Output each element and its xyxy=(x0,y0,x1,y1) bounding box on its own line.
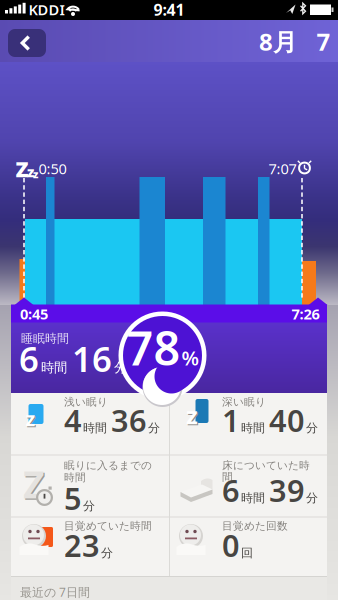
staticText: 時間 xyxy=(83,420,107,435)
button[interactable]: Back xyxy=(8,29,46,57)
staticText: 目覚めた回数 xyxy=(222,519,288,532)
staticText: 時間 xyxy=(41,359,67,376)
staticText: KDDI xyxy=(28,0,64,19)
staticText: 16 xyxy=(72,335,112,381)
staticText: 分 xyxy=(101,545,113,560)
staticText: 0:45 xyxy=(20,304,48,324)
staticText: 40 xyxy=(269,400,305,440)
staticText: 間 xyxy=(222,470,233,483)
staticText: 床についていた時 xyxy=(222,459,310,472)
staticText: 1 xyxy=(222,400,240,440)
staticText: Z xyxy=(23,459,45,509)
staticText: 睡眠時間 xyxy=(21,331,69,346)
staticText: 36 xyxy=(111,400,147,440)
staticText: 7 xyxy=(316,26,330,57)
staticText: Z xyxy=(15,155,28,183)
staticText: z xyxy=(27,162,34,181)
staticText: 眠りに入るまでの xyxy=(64,459,152,472)
staticText: Z xyxy=(24,460,46,510)
staticText: 6 xyxy=(222,470,240,510)
staticText: 4 xyxy=(64,400,82,440)
staticText: 5 xyxy=(64,478,82,518)
staticText: z xyxy=(33,167,38,181)
staticText: 浅い眠り xyxy=(64,395,108,408)
staticText: z xyxy=(186,399,198,431)
staticText: 時間 xyxy=(64,471,86,484)
staticText: 39 xyxy=(269,470,305,510)
staticText: 深い眠り xyxy=(222,395,266,408)
staticText: % xyxy=(181,345,199,371)
staticText: 目覚めていた時間 xyxy=(64,519,152,532)
staticText: 23 xyxy=(64,525,100,565)
staticText: 分 xyxy=(148,420,160,435)
staticText: 時間 xyxy=(241,420,265,435)
staticText: 回 xyxy=(241,545,253,560)
staticText: 0 xyxy=(222,525,240,565)
staticText: 7:26 xyxy=(291,304,319,324)
staticText: 78 xyxy=(126,316,180,378)
staticText: 分 xyxy=(83,498,95,513)
staticText: z xyxy=(187,400,199,432)
staticText: z xyxy=(25,405,35,432)
staticText: 分 xyxy=(306,490,318,505)
staticText: 最近の 7日間 xyxy=(20,584,90,600)
staticText: 7:07 xyxy=(268,159,296,178)
staticText: 0:50 xyxy=(38,159,66,178)
staticText: 時間 xyxy=(241,490,265,505)
staticText: 9:41 xyxy=(153,0,184,20)
staticText: 6 xyxy=(19,335,39,381)
staticText: 分 xyxy=(114,359,127,376)
staticText: 8月 xyxy=(259,26,297,57)
staticText: 分 xyxy=(306,420,318,435)
staticText: z xyxy=(26,406,36,433)
